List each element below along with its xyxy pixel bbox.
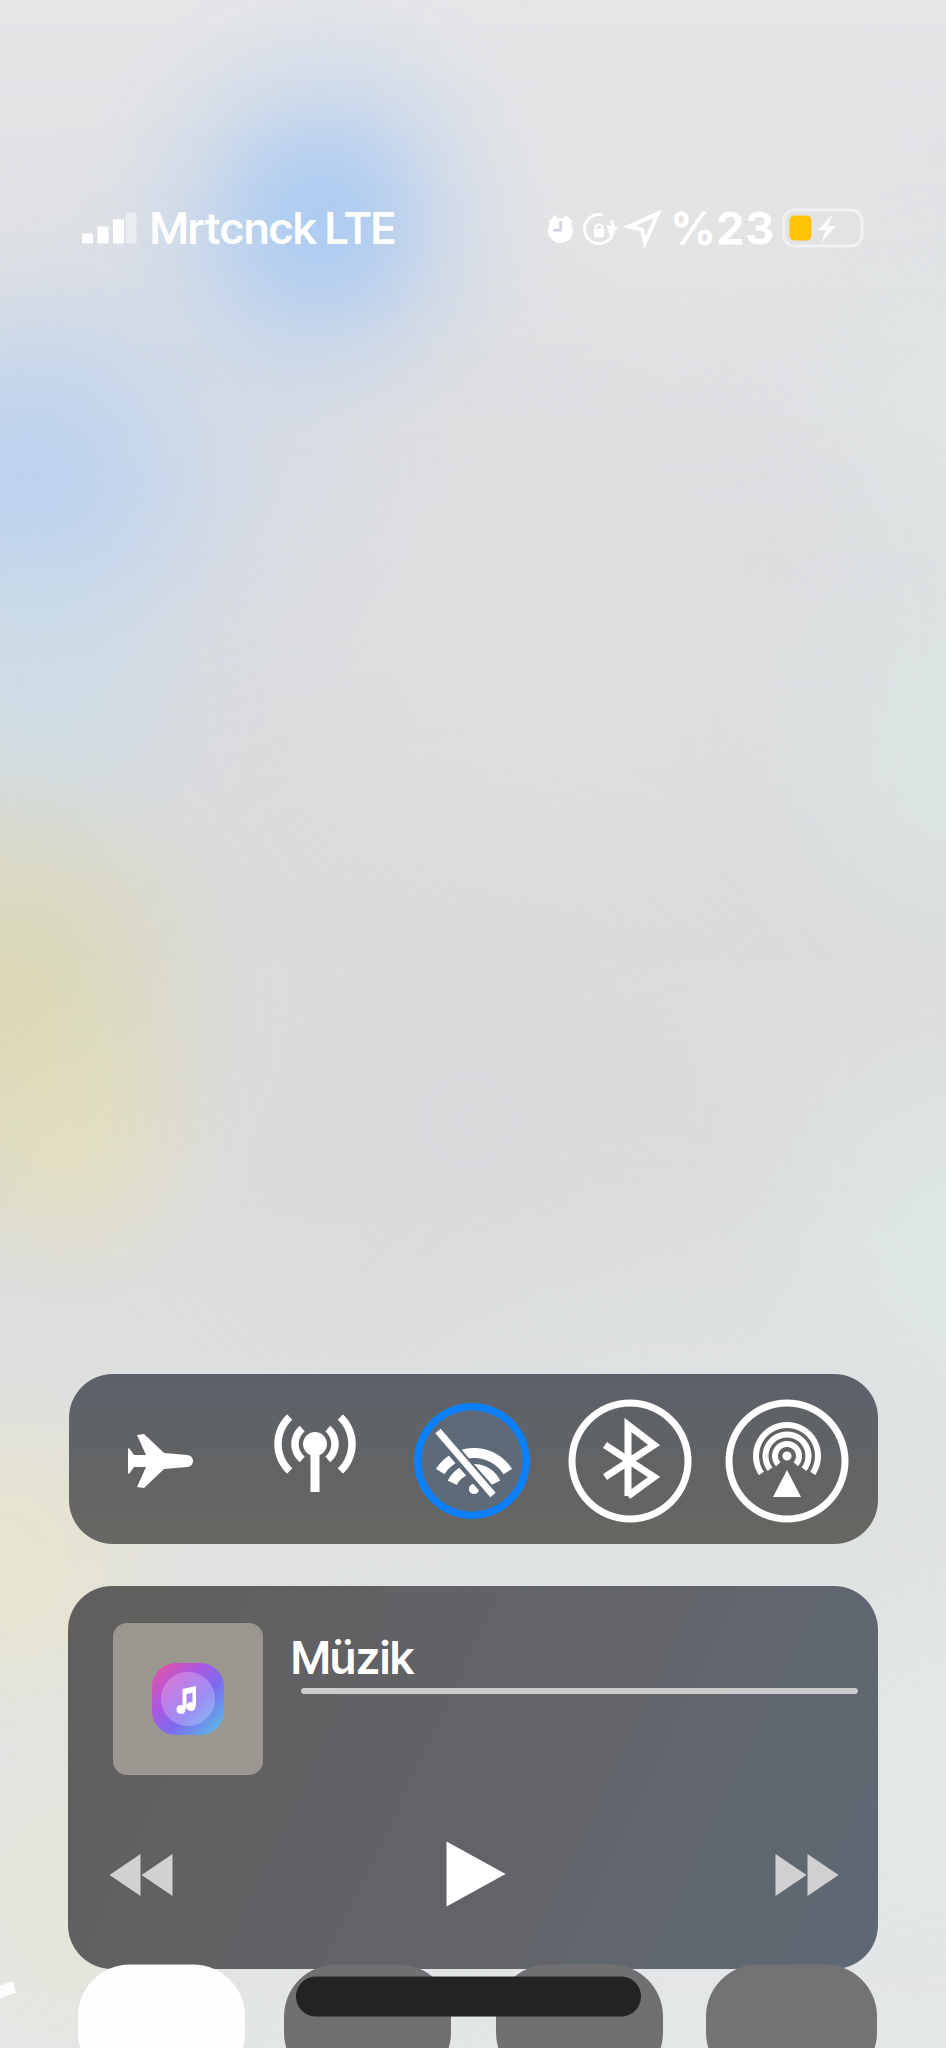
staticText: %23 (670, 201, 774, 255)
button[interactable]: Bluetooth (567, 1398, 693, 1524)
button[interactable]: Play (421, 1831, 531, 1917)
button[interactable]: AirDrop (724, 1398, 850, 1524)
button[interactable]: Wi-Fi (409, 1398, 535, 1524)
button[interactable]: Cellular Data (260, 1397, 370, 1507)
button[interactable]: Previous track (86, 1832, 196, 1918)
staticText: Müzik (291, 1630, 414, 1685)
button[interactable]: Album artwork (113, 1623, 263, 1775)
staticText: Mrtcnck LTE (150, 201, 396, 255)
button[interactable]: Next track (752, 1832, 862, 1918)
button[interactable]: Airplane Mode (106, 1406, 216, 1516)
